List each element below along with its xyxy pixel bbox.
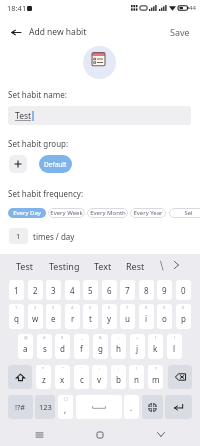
button[interactable]: ! bbox=[129, 365, 144, 389]
button[interactable]: ) bbox=[167, 334, 182, 359]
button[interactable]: Back bbox=[3, 19, 29, 45]
staticText: . bbox=[130, 402, 133, 413]
button[interactable]: Shift bbox=[8, 365, 32, 389]
button[interactable]: Back bbox=[139, 423, 183, 446]
button[interactable]: : bbox=[92, 365, 107, 389]
button[interactable]: + bbox=[130, 334, 145, 359]
staticText: v bbox=[97, 374, 102, 385]
staticText: 3 bbox=[51, 285, 56, 296]
button[interactable]: Rest bbox=[122, 254, 149, 277]
staticText: Set habit group: bbox=[8, 138, 69, 149]
button[interactable]: 8 bbox=[139, 280, 154, 300]
button[interactable]: ' bbox=[74, 365, 89, 389]
button[interactable]: 123 bbox=[35, 395, 55, 419]
staticText: 6 bbox=[108, 305, 111, 310]
button[interactable]: _ bbox=[74, 334, 89, 359]
button[interactable]: 9 bbox=[157, 280, 172, 300]
button[interactable]: ? bbox=[148, 365, 163, 389]
staticText: ' bbox=[81, 366, 82, 371]
button[interactable]: 3 bbox=[46, 280, 61, 300]
staticText: Every Month bbox=[90, 209, 126, 217]
button[interactable]: 6 bbox=[102, 304, 117, 329]
staticText: Default bbox=[44, 160, 67, 169]
button[interactable]: Save bbox=[160, 21, 200, 43]
button[interactable]: More suggestions bbox=[169, 258, 183, 272]
button[interactable]: # bbox=[37, 334, 52, 359]
staticText: * bbox=[42, 366, 45, 371]
button[interactable]: Every Month bbox=[87, 208, 128, 218]
staticText: Testing bbox=[49, 260, 80, 272]
staticText: n bbox=[134, 374, 139, 385]
button[interactable]: Backspace bbox=[168, 365, 192, 389]
staticText: 5 bbox=[89, 305, 92, 310]
button[interactable]: 1 bbox=[9, 280, 24, 300]
button[interactable]: Space bbox=[76, 395, 122, 419]
button[interactable]: 4 bbox=[65, 280, 80, 300]
staticText: y bbox=[107, 313, 112, 324]
staticText: @ bbox=[24, 335, 28, 340]
button[interactable]: Change language bbox=[142, 395, 163, 419]
staticText: e bbox=[51, 313, 56, 324]
staticText: Test bbox=[15, 110, 32, 122]
button[interactable]: Text bbox=[90, 254, 116, 277]
button[interactable]: 7 bbox=[120, 280, 135, 300]
button[interactable]: Test bbox=[12, 254, 38, 277]
button[interactable]: 2 bbox=[28, 304, 43, 329]
button[interactable]: " bbox=[55, 365, 70, 389]
button[interactable]: 0 bbox=[176, 304, 191, 329]
staticText: s bbox=[43, 343, 47, 354]
button[interactable]: □ bbox=[58, 395, 73, 419]
button[interactable]: 0 bbox=[176, 280, 191, 300]
button[interactable]: Home bbox=[78, 423, 122, 446]
button[interactable]: 3 bbox=[46, 304, 61, 329]
staticText: a bbox=[23, 343, 28, 354]
button[interactable]: 1 bbox=[9, 304, 24, 329]
button[interactable]: 5 bbox=[83, 304, 98, 329]
button[interactable]: 8 bbox=[139, 304, 154, 329]
staticText: Every Week bbox=[50, 209, 83, 217]
staticText: Add new habit bbox=[29, 26, 87, 38]
staticText: u bbox=[125, 313, 130, 324]
button[interactable]: Add group bbox=[9, 155, 27, 173]
staticText: 1 bbox=[14, 285, 19, 296]
staticText: 7 bbox=[126, 305, 129, 310]
button[interactable]: 5 bbox=[83, 280, 98, 300]
button[interactable]: Sel bbox=[169, 208, 200, 218]
button[interactable]: ; bbox=[111, 365, 126, 389]
button[interactable]: - bbox=[111, 334, 126, 359]
button[interactable]: !?# bbox=[8, 395, 33, 419]
staticText: Every Day bbox=[13, 209, 41, 217]
button[interactable]: @ bbox=[18, 334, 33, 359]
staticText: l bbox=[173, 343, 176, 354]
staticText: i bbox=[145, 313, 148, 324]
button[interactable]: 4 bbox=[65, 304, 80, 329]
button[interactable]: 9 bbox=[157, 304, 172, 329]
staticText: times / day bbox=[33, 231, 75, 242]
button[interactable]: 1 bbox=[9, 228, 28, 244]
staticText: 3 bbox=[52, 305, 55, 310]
button[interactable]: 7 bbox=[120, 304, 135, 329]
staticText: t bbox=[89, 313, 92, 324]
button[interactable]: Every Day bbox=[8, 208, 46, 218]
button[interactable]: & bbox=[93, 334, 108, 359]
button[interactable]: 6 bbox=[102, 280, 117, 300]
button[interactable]: Habit icon bbox=[83, 46, 116, 79]
other: Enter bbox=[173, 403, 184, 411]
button[interactable]: Recents bbox=[17, 423, 61, 446]
staticText: 2 bbox=[34, 305, 37, 310]
button[interactable]: Every Week bbox=[48, 208, 85, 218]
staticText: w bbox=[32, 313, 39, 324]
button[interactable]: Default bbox=[39, 155, 72, 173]
button[interactable]: Test bbox=[8, 106, 191, 125]
button[interactable]: . bbox=[124, 395, 139, 419]
button[interactable]: ( bbox=[148, 334, 163, 359]
button[interactable]: Enter bbox=[165, 395, 192, 419]
button[interactable]: * bbox=[36, 365, 51, 389]
button[interactable]: Every Year bbox=[130, 208, 166, 218]
button[interactable]: Testing bbox=[45, 254, 84, 277]
staticText: " bbox=[62, 366, 64, 371]
staticText: Text bbox=[94, 260, 112, 272]
button[interactable]: 2 bbox=[28, 280, 43, 300]
staticText: $ bbox=[61, 335, 64, 340]
button[interactable]: $ bbox=[55, 334, 70, 359]
